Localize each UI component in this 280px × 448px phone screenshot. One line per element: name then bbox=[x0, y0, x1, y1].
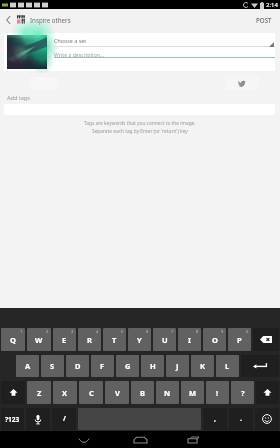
button[interactable]: Shift bbox=[256, 381, 279, 404]
staticText: T bbox=[112, 335, 117, 345]
button[interactable]: , bbox=[203, 408, 227, 430]
button[interactable]: J bbox=[166, 355, 189, 377]
button[interactable]: V bbox=[105, 381, 129, 404]
button[interactable]: Backspace bbox=[253, 328, 279, 351]
button[interactable]: Voice input bbox=[26, 408, 50, 430]
staticText: 0 bbox=[246, 329, 249, 334]
button[interactable]: ?123 bbox=[1, 408, 24, 430]
button[interactable]: X bbox=[53, 381, 77, 404]
staticText: 3 bbox=[71, 329, 74, 334]
staticText: F bbox=[100, 361, 105, 371]
button[interactable]: Selected photo bbox=[7, 35, 47, 69]
button[interactable]: Recents bbox=[179, 433, 207, 447]
staticText: X bbox=[62, 388, 68, 398]
button[interactable]: U bbox=[153, 328, 176, 351]
button[interactable]: Shift bbox=[1, 381, 25, 404]
staticText: / bbox=[63, 414, 66, 424]
button[interactable]: POST bbox=[248, 9, 280, 30]
staticText: R bbox=[87, 335, 92, 345]
button[interactable]: Z bbox=[27, 381, 51, 404]
staticText: , bbox=[214, 414, 216, 424]
button[interactable]: D bbox=[66, 355, 89, 377]
button[interactable]: E bbox=[53, 328, 76, 351]
button[interactable]: ? bbox=[231, 381, 254, 404]
button[interactable]: S bbox=[41, 355, 64, 377]
staticText: Write a description... bbox=[54, 51, 105, 58]
staticText: 1 bbox=[20, 329, 23, 334]
staticText: 8 bbox=[196, 329, 199, 334]
staticText: POST bbox=[256, 16, 272, 24]
button[interactable]: W bbox=[27, 328, 51, 351]
staticText: A bbox=[25, 361, 31, 371]
staticText: H bbox=[150, 361, 156, 371]
staticText: Choose a set bbox=[54, 37, 87, 44]
staticText: . bbox=[240, 414, 242, 424]
staticText: E bbox=[62, 335, 67, 345]
staticText: 2:14 bbox=[266, 1, 278, 9]
staticText: N bbox=[164, 388, 171, 398]
staticText: ! bbox=[216, 388, 219, 398]
staticText: B bbox=[140, 388, 145, 398]
staticText: Tags are keywords that you connect to th… bbox=[84, 120, 196, 127]
button[interactable]: B bbox=[131, 381, 154, 404]
staticText: G bbox=[125, 361, 131, 371]
staticText: W bbox=[35, 335, 43, 345]
staticText: O bbox=[212, 335, 218, 345]
staticText: L bbox=[225, 361, 230, 371]
button[interactable]: . bbox=[229, 408, 253, 430]
staticText: 9 bbox=[221, 329, 224, 334]
button[interactable]: G bbox=[116, 355, 139, 377]
button[interactable]: Y bbox=[128, 328, 151, 351]
button[interactable]: P bbox=[228, 328, 251, 351]
button[interactable]: Back bbox=[0, 9, 16, 30]
button[interactable]: H bbox=[141, 355, 164, 377]
staticText: I bbox=[188, 335, 191, 345]
button[interactable]: Q bbox=[1, 328, 25, 351]
button[interactable]: C bbox=[79, 381, 103, 404]
button[interactable]: I bbox=[178, 328, 201, 351]
staticText: 7 bbox=[171, 329, 174, 334]
button[interactable]: L bbox=[216, 355, 239, 377]
button[interactable]: N bbox=[156, 381, 179, 404]
button[interactable]: Home bbox=[126, 433, 154, 447]
staticText: D bbox=[75, 361, 81, 371]
staticText: V bbox=[115, 388, 120, 398]
staticText: Y bbox=[137, 335, 142, 345]
button[interactable]: K bbox=[191, 355, 214, 377]
button[interactable]: M bbox=[181, 381, 204, 404]
staticText: 6 bbox=[146, 329, 149, 334]
button[interactable]: R bbox=[78, 328, 101, 351]
staticText: ?123 bbox=[5, 415, 20, 424]
button[interactable]: T bbox=[103, 328, 126, 351]
button[interactable]: ! bbox=[206, 381, 229, 404]
button[interactable]: A bbox=[16, 355, 39, 377]
staticText: 2 bbox=[46, 329, 49, 334]
staticText: U bbox=[162, 335, 168, 345]
staticText: 5 bbox=[121, 329, 124, 334]
staticText: 4 bbox=[96, 329, 99, 334]
staticText: ? bbox=[241, 388, 245, 398]
staticText: Add tags bbox=[7, 94, 30, 101]
button[interactable]: Share to Twitter bbox=[225, 77, 259, 90]
staticText: M bbox=[189, 388, 197, 398]
staticText: Z bbox=[37, 388, 42, 398]
staticText: C bbox=[89, 388, 94, 398]
button[interactable]: Emoji bbox=[255, 408, 279, 430]
staticText: Separate each tag by Enter (or 'return')… bbox=[92, 128, 188, 135]
staticText: Inspire others bbox=[30, 16, 71, 24]
button[interactable]: Back bbox=[70, 433, 98, 447]
staticText: J bbox=[176, 361, 179, 371]
staticText: Q bbox=[10, 335, 16, 345]
staticText: K bbox=[200, 361, 205, 371]
staticText: P bbox=[237, 335, 242, 345]
button[interactable]: Enter bbox=[241, 355, 279, 377]
staticText: S bbox=[50, 361, 55, 371]
button[interactable]: / bbox=[52, 408, 76, 430]
button[interactable]: F bbox=[91, 355, 114, 377]
button[interactable]: O bbox=[203, 328, 226, 351]
